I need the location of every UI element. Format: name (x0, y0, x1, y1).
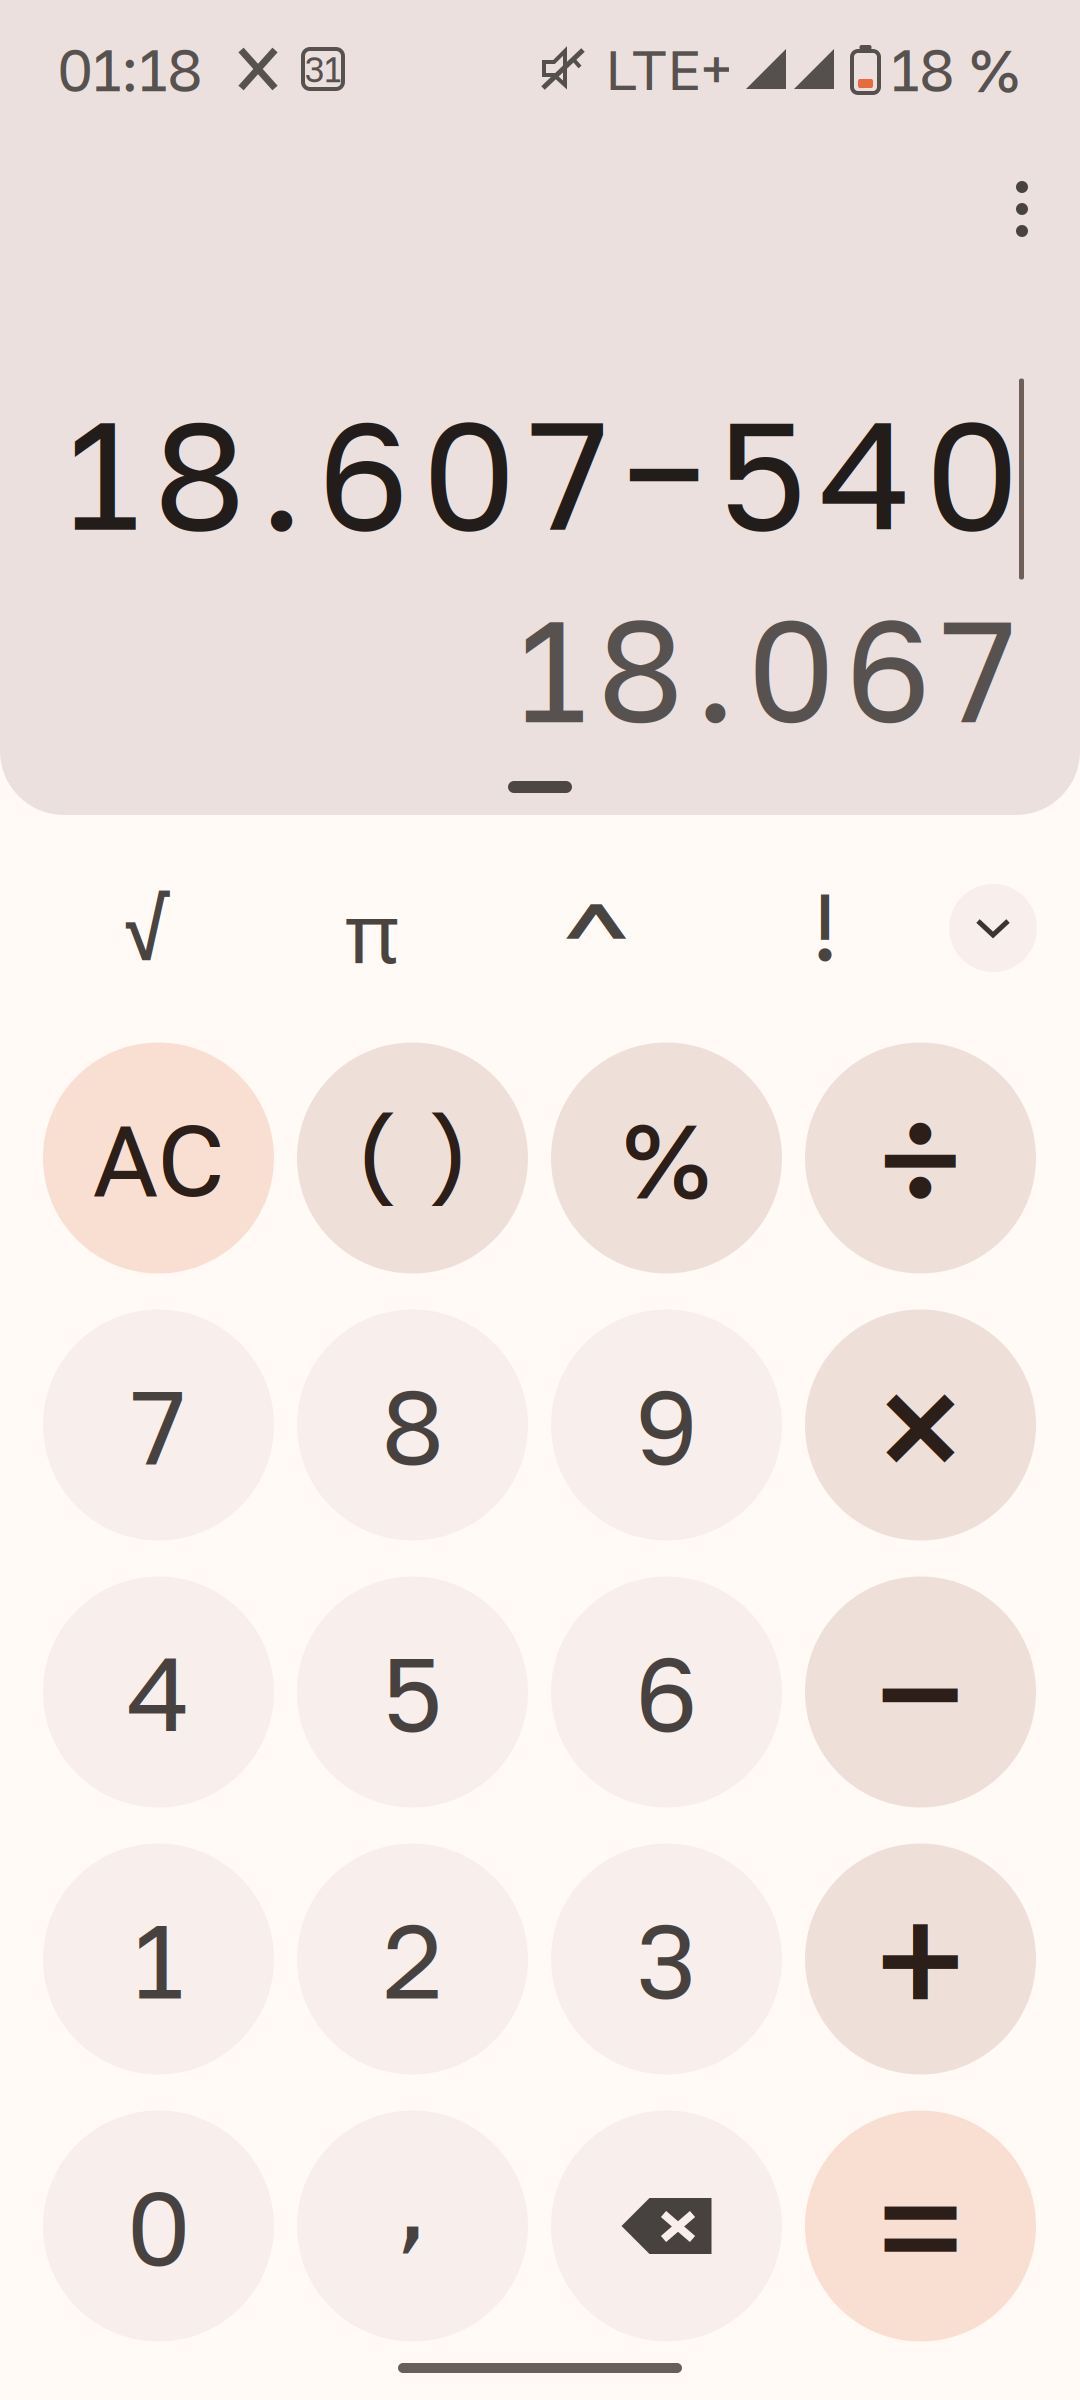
button[interactable]: − (805, 1576, 1036, 1807)
button[interactable]: 1 (43, 1843, 274, 2074)
staticText: 18.067 (518, 582, 1017, 754)
staticText: 0 (126, 2164, 190, 2288)
staticText: × (873, 1323, 967, 1527)
button[interactable]: More options (974, 161, 1070, 257)
staticText: AC (92, 1098, 225, 1218)
button[interactable]: × (805, 1309, 1036, 1540)
staticText: LTE+ (605, 35, 732, 103)
button[interactable]: 5 (297, 1576, 528, 1807)
button[interactable]: Backspace (551, 2110, 782, 2341)
button[interactable]: 7 (43, 1309, 274, 1540)
staticText: 31 (304, 48, 341, 90)
button[interactable]: ÷ (805, 1042, 1036, 1273)
button[interactable]: AC (43, 1042, 274, 1273)
button[interactable]: ( ) (297, 1042, 528, 1273)
staticText: 9 (635, 1363, 698, 1487)
staticText: ^ (559, 867, 632, 1027)
button[interactable]: % (551, 1042, 782, 1273)
staticText: − (874, 1592, 966, 1792)
staticText: % (623, 1096, 710, 1220)
button[interactable]: 6 (551, 1576, 782, 1807)
staticText: ! (811, 869, 839, 981)
staticText: 1 (133, 1897, 183, 2021)
button[interactable]: + (805, 1843, 1036, 2074)
button[interactable]: 9 (551, 1309, 782, 1540)
button[interactable]: 0 (43, 2110, 274, 2341)
staticText: 5 (382, 1630, 442, 1754)
staticText: √ (125, 877, 171, 969)
staticText: = (876, 2130, 964, 2322)
staticText: 3 (636, 1897, 697, 2021)
button[interactable]: ! (730, 850, 920, 1000)
staticText: 4 (127, 1630, 190, 1754)
staticText: 8 (381, 1363, 444, 1487)
staticText: 7 (131, 1363, 186, 1487)
button[interactable]: 4 (43, 1576, 274, 1807)
button[interactable]: √ (53, 850, 243, 1000)
staticText: π (345, 875, 399, 987)
staticText: ÷ (877, 1064, 964, 1252)
button[interactable]: = (805, 2110, 1036, 2341)
button[interactable]: Show more functions (949, 884, 1037, 972)
staticText: + (874, 1859, 966, 2059)
button[interactable]: , (297, 2110, 528, 2341)
button[interactable]: π (277, 850, 467, 1000)
staticText: 01:18 (57, 34, 203, 104)
button[interactable]: ^ (501, 850, 691, 1000)
staticText: 18.607−540 (67, 381, 1019, 563)
button[interactable]: 3 (551, 1843, 782, 2074)
button[interactable]: 2 (297, 1843, 528, 2074)
staticText: 6 (635, 1630, 698, 1754)
button[interactable]: 8 (297, 1309, 528, 1540)
staticText: , (397, 2136, 428, 2260)
staticText: 18 % (891, 34, 1019, 104)
staticText: ( ) (355, 1084, 469, 1208)
staticText: 2 (382, 1897, 442, 2021)
